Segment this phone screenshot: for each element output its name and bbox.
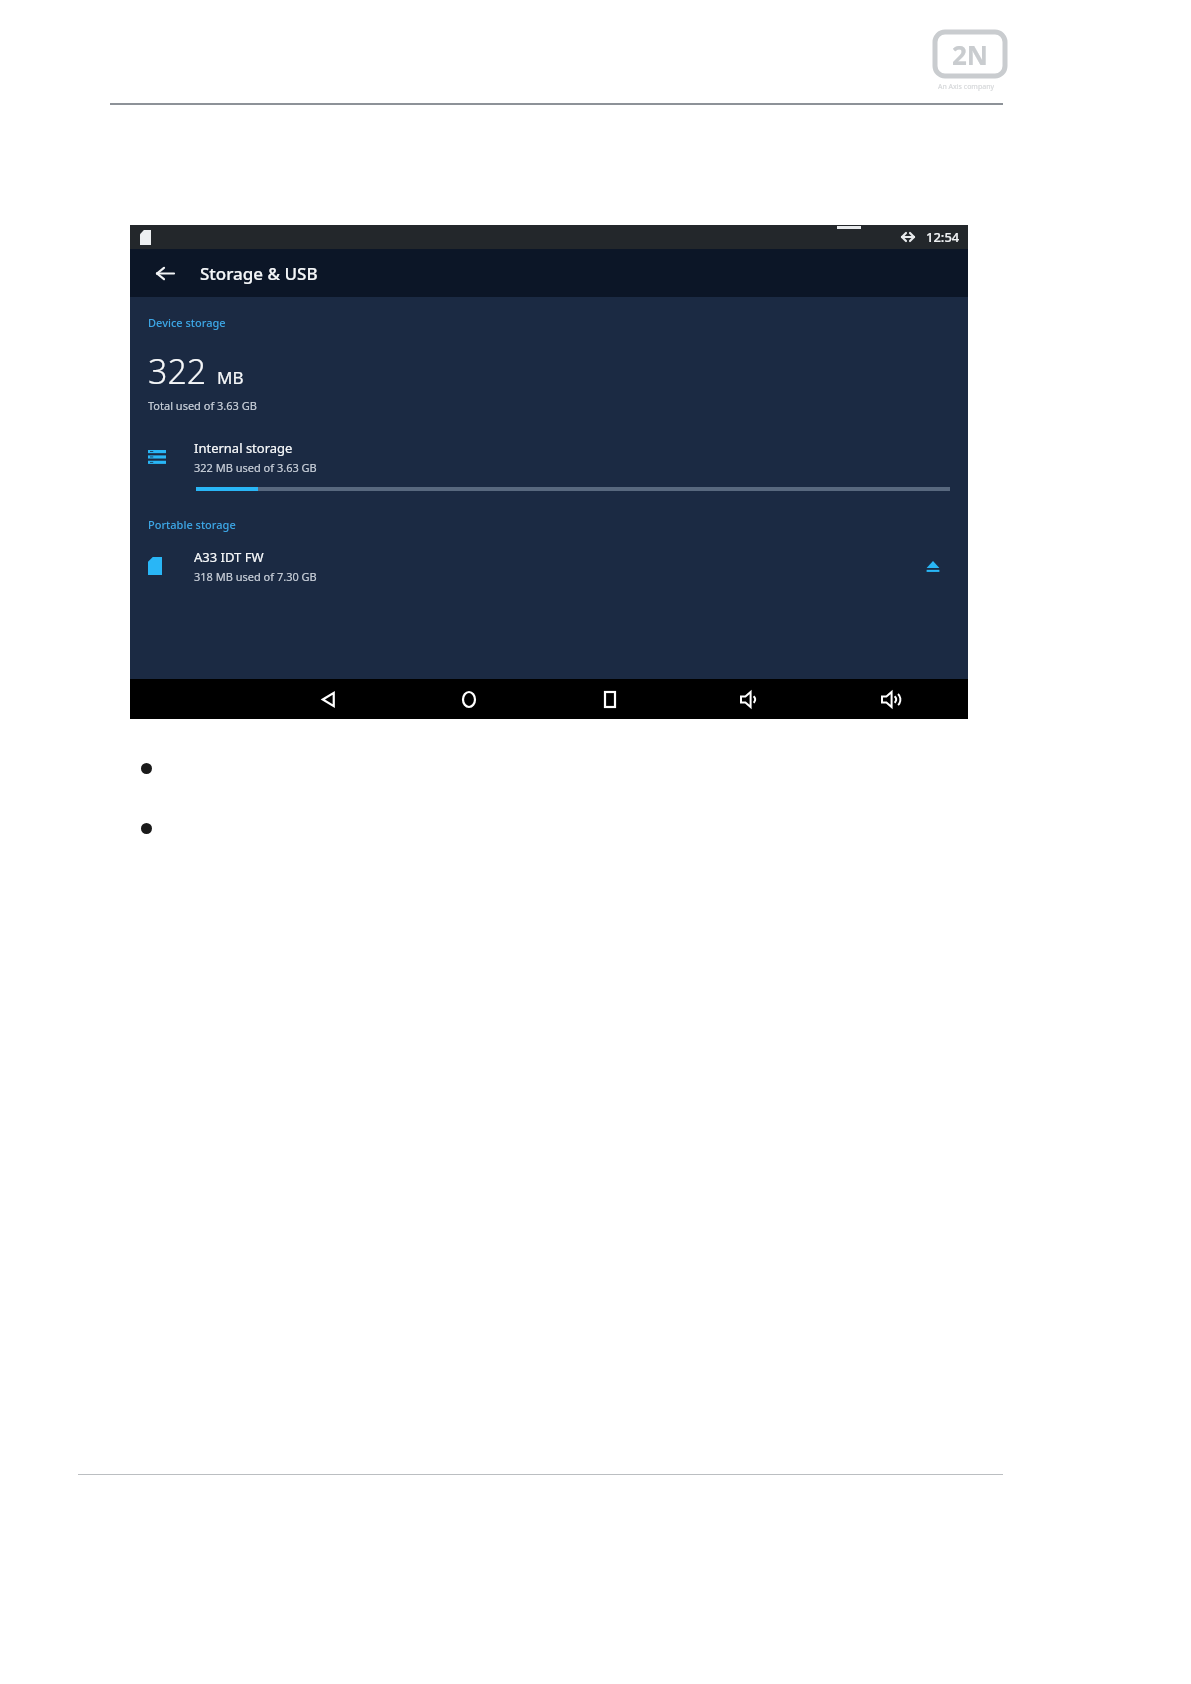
button[interactable]: Eject [916, 549, 950, 583]
staticText: An Axis company [938, 82, 995, 92]
button[interactable]: Back [148, 256, 182, 290]
staticText: A33 IDT FW [194, 548, 264, 566]
staticText: Total used of 3.63 GB [148, 398, 257, 413]
button[interactable]: Internal storage [130, 439, 968, 491]
button[interactable]: Back [308, 679, 348, 719]
button[interactable]: A33 IDT FW [130, 548, 968, 584]
button[interactable]: Volume up [872, 679, 912, 719]
staticText: 318 MB used of 7.30 GB [194, 569, 317, 584]
button[interactable]: Volume down [731, 679, 771, 719]
staticText: Portable storage [148, 517, 236, 532]
staticText: MB [217, 366, 244, 389]
staticText: Storage & USB [200, 262, 318, 285]
staticText: 12:54 [926, 228, 960, 246]
button[interactable]: Recent apps [590, 679, 630, 719]
staticText: 322 MB used of 3.63 GB [194, 460, 317, 475]
staticText: 2N [952, 37, 989, 72]
staticText: Internal storage [194, 439, 293, 457]
button[interactable]: Home [449, 679, 489, 719]
staticText: Device storage [148, 315, 226, 330]
staticText: 322 [148, 348, 207, 394]
